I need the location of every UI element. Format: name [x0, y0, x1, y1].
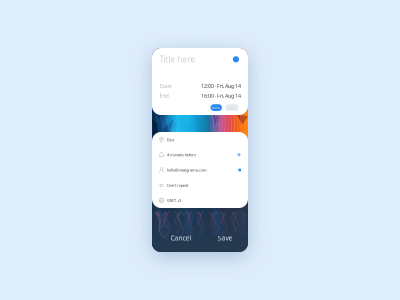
button[interactable]: GMT +3 — [152, 193, 248, 208]
staticText: hello@vlatigrama.com — [167, 167, 207, 173]
staticText: End — [159, 92, 168, 99]
staticText: Cancel — [170, 234, 191, 242]
button[interactable]: hello@vlatigrama.com — [152, 162, 248, 178]
staticText: East — [167, 137, 174, 142]
button[interactable]: 4 minutes before — [152, 147, 248, 162]
staticText: Cancel — [227, 106, 236, 109]
staticText: GMT +3 — [167, 198, 181, 203]
staticText: 12:00 · Fri, Aug 14 — [201, 82, 241, 89]
button[interactable]: Save — [210, 230, 240, 246]
staticText: Start — [159, 82, 171, 89]
staticText: 4 minutes before — [167, 152, 196, 157]
staticText: Don't repeat — [167, 182, 188, 188]
staticText: Done — [212, 106, 220, 109]
button[interactable]: Cancel — [225, 104, 239, 111]
button[interactable]: Don't repeat — [152, 178, 248, 193]
button[interactable]: Done — [210, 104, 222, 111]
button[interactable]: Cancel — [166, 230, 196, 246]
button[interactable]: East — [152, 132, 248, 147]
staticText: Save — [217, 234, 232, 242]
staticText: 16:00 · Fri, Aug 14 — [201, 92, 241, 99]
staticText: Title here — [159, 54, 195, 65]
